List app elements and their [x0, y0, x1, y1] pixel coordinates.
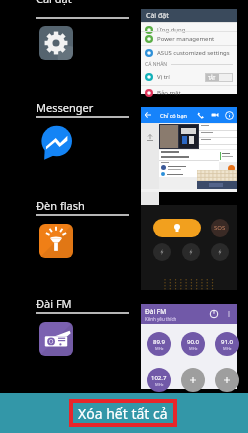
staticText: MHz [223, 346, 232, 351]
staticText: CÁ NHÂN [145, 61, 168, 68]
staticText: Xóa hết tất cả [78, 404, 168, 423]
button[interactable]: Xóa hết tất cả [0, 393, 248, 433]
button[interactable]: Đài FM [36, 296, 72, 311]
button[interactable]: Messenger [39, 126, 73, 160]
button[interactable]: Đèn flash [39, 224, 73, 258]
staticText: 91.0 [221, 338, 233, 346]
staticText: 89.9 [153, 338, 165, 346]
staticText: Kênh yêu thích [145, 316, 177, 322]
staticText: Vị trí [157, 73, 170, 81]
staticText: Đài FM [145, 307, 167, 316]
staticText: Chỉ có bạn [160, 112, 187, 119]
staticText: Đài FM [36, 296, 72, 311]
staticText: Cài đặt [146, 11, 169, 21]
staticText: TẮT [208, 75, 216, 81]
staticText: ASUS customized settings [157, 49, 230, 57]
button[interactable]: Đài FM [39, 322, 73, 356]
button[interactable]: Messenger [36, 100, 94, 115]
staticText: Messenger [36, 100, 94, 115]
staticText: Power management [157, 35, 215, 43]
button[interactable]: Đèn flash preview [141, 205, 237, 290]
staticText: Bảo mật [157, 89, 181, 97]
staticText: SOS [214, 224, 226, 232]
staticText: 102.7 [151, 374, 167, 382]
button[interactable]: Đèn flash [36, 198, 85, 213]
button[interactable]: Đài FM preview [141, 304, 237, 389]
staticText: Cài đặt [36, 0, 72, 5]
button[interactable]: Cài đặt [36, 0, 72, 5]
button[interactable]: Messenger preview [141, 107, 237, 192]
staticText: Đèn flash [36, 198, 85, 213]
staticText: MHz [155, 346, 164, 351]
staticText: MHz [189, 346, 198, 351]
staticText: MHz [155, 382, 164, 387]
button[interactable]: Cài đặt [39, 26, 73, 60]
staticText: 90.0 [187, 338, 199, 346]
staticText: Ứng dụng [157, 26, 186, 34]
button[interactable]: Cài đặt preview [141, 9, 237, 94]
